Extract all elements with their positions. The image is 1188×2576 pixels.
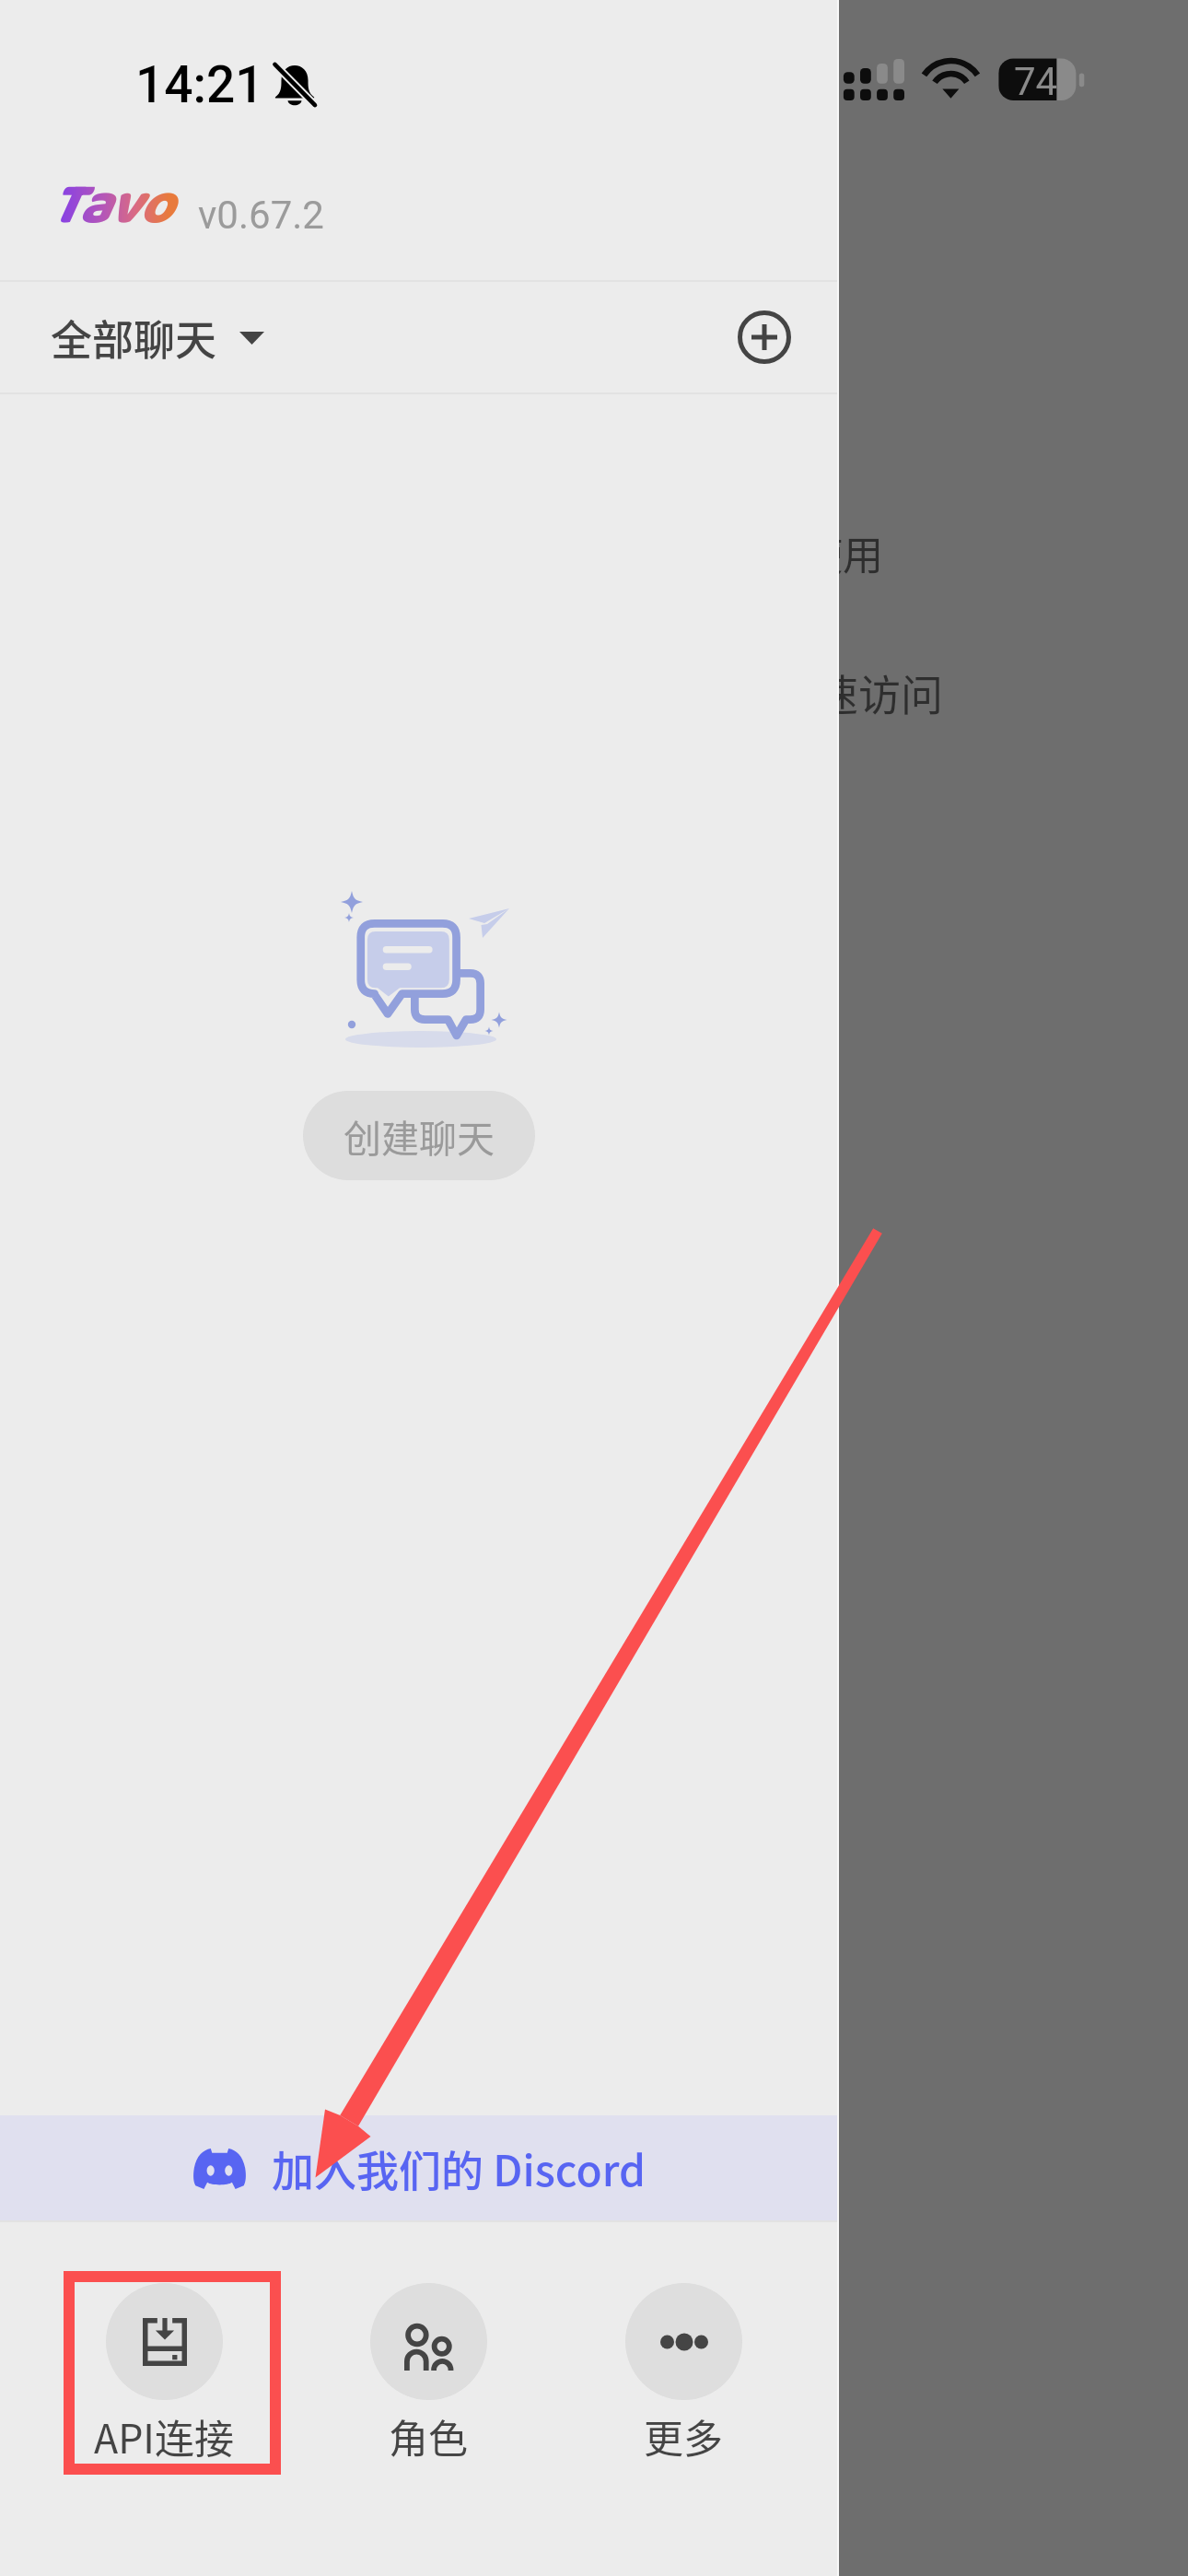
- button[interactable]: Close menu: [839, 0, 1188, 2576]
- staticText: 创建聊天: [344, 1108, 495, 1163]
- button[interactable]: Characters: [320, 2277, 537, 2472]
- button[interactable]: More: [575, 2277, 792, 2472]
- staticText: 74: [1014, 59, 1058, 104]
- staticText: 快速访问: [774, 662, 943, 723]
- other: Characters: [370, 2283, 487, 2400]
- button[interactable]: API connections: [55, 2277, 273, 2472]
- staticText: 全部聊天: [51, 308, 217, 368]
- staticText: v0.67.2: [198, 193, 324, 238]
- staticText: 更多: [644, 2407, 723, 2465]
- button[interactable]: 全部聊天: [49, 295, 266, 381]
- staticText: 加入我们的 Discord: [272, 2137, 646, 2199]
- staticText: 角色: [389, 2407, 468, 2465]
- staticText: API连接: [94, 2407, 234, 2465]
- button[interactable]: New chat: [730, 303, 798, 371]
- button[interactable]: 加入我们的 Discord: [0, 2115, 839, 2220]
- button[interactable]: 创建聊天: [303, 1091, 535, 1180]
- staticText: 最近使用: [721, 523, 883, 582]
- other: More: [625, 2283, 742, 2400]
- staticText: Tavo: [49, 159, 171, 252]
- other: API connections: [106, 2283, 223, 2400]
- staticText: 14:21: [135, 55, 264, 114]
